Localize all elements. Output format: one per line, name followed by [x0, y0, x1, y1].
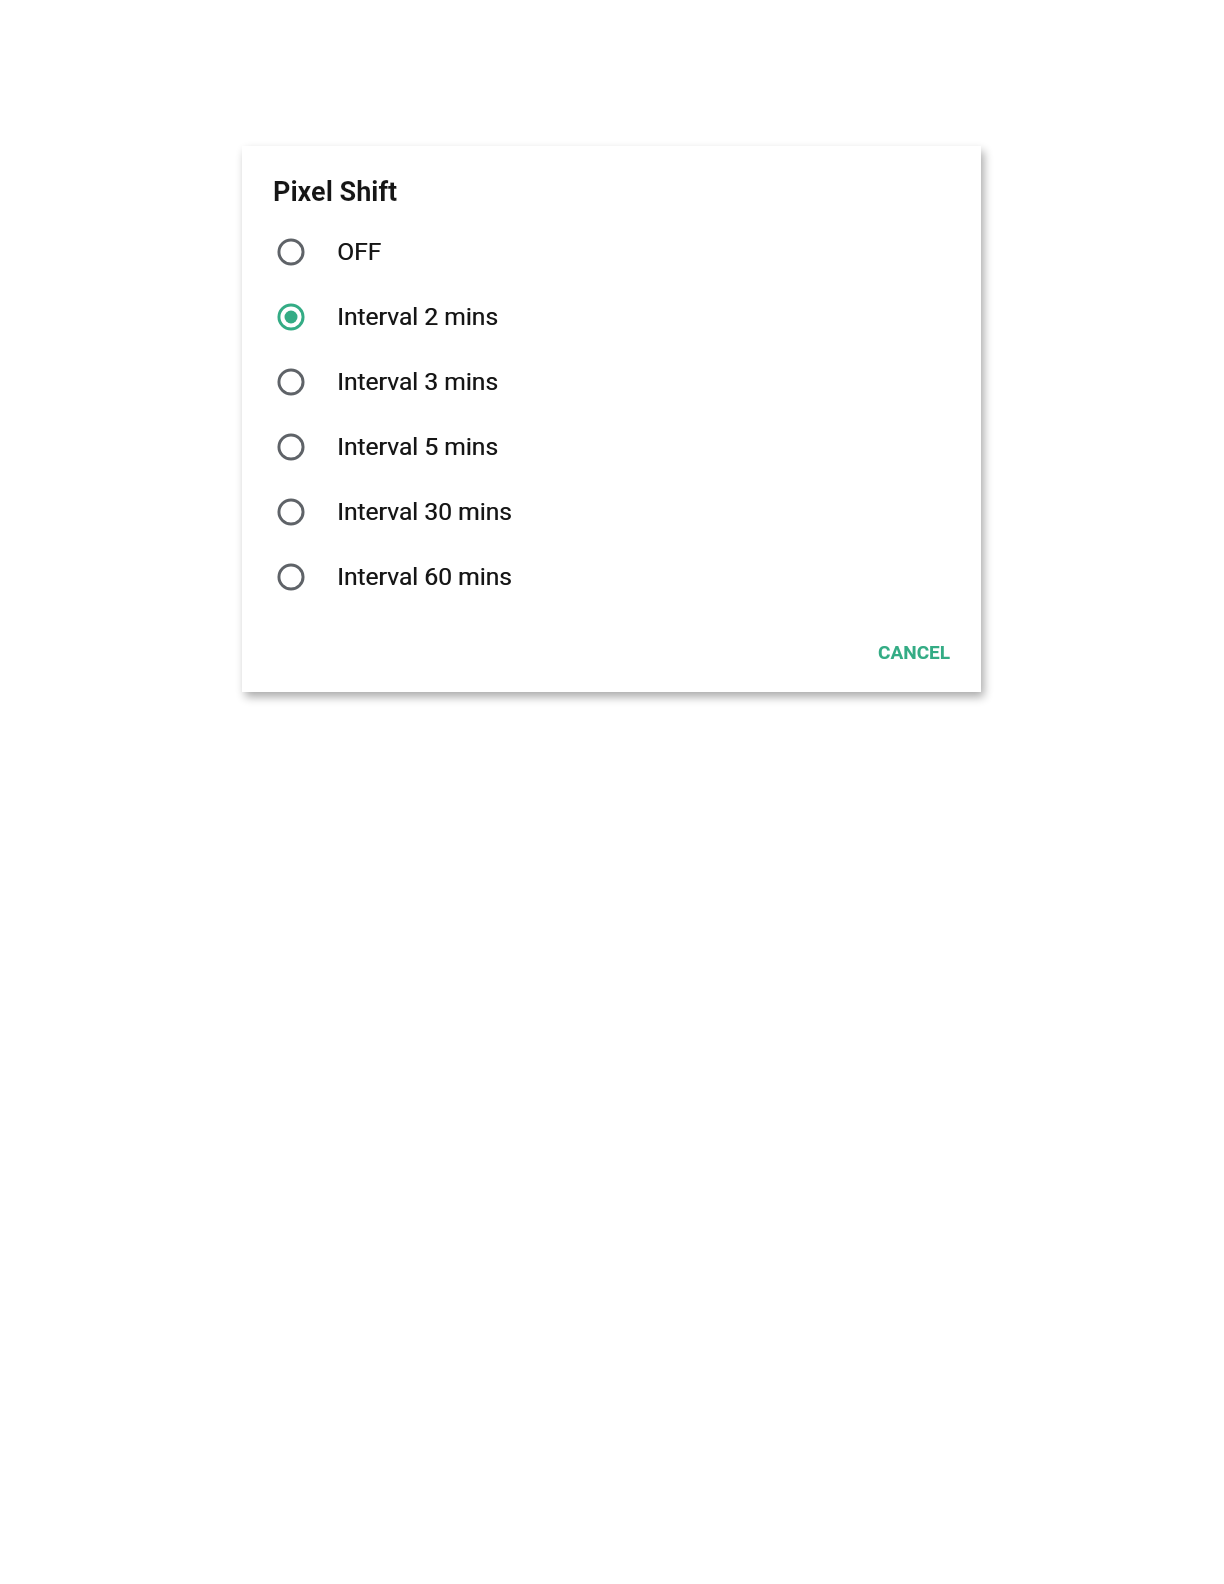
staticText: Interval 3 mins: [337, 367, 498, 396]
staticText: Interval 30 mins: [337, 497, 512, 526]
button[interactable]: Interval 3 mins: [242, 349, 981, 414]
staticText: Pixel Shift: [273, 176, 398, 208]
staticText: CANCEL: [878, 641, 951, 663]
button[interactable]: Interval 30 mins: [242, 479, 981, 544]
staticText: Interval 2 mins: [337, 302, 498, 331]
button[interactable]: Interval 2 mins: [242, 284, 981, 349]
button[interactable]: Interval 5 mins: [242, 414, 981, 479]
button[interactable]: Interval 60 mins: [242, 544, 981, 609]
button[interactable]: OFF: [242, 219, 981, 284]
button[interactable]: CANCEL: [862, 627, 967, 677]
staticText: Interval 60 mins: [337, 562, 512, 591]
staticText: OFF: [337, 237, 382, 266]
staticText: Interval 5 mins: [337, 432, 498, 461]
